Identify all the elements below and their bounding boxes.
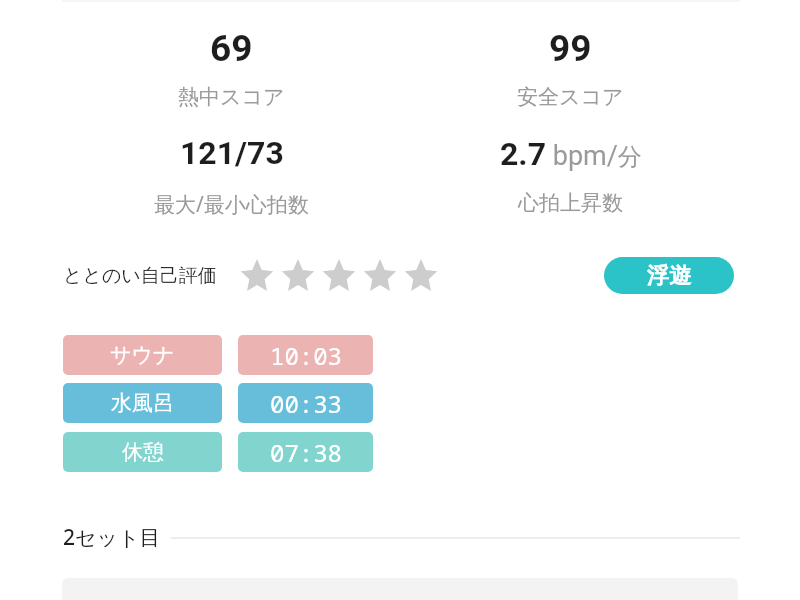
staticText: 熱中スコア [178, 84, 285, 110]
button[interactable]: 07:38 [238, 432, 373, 472]
staticText: 浮遊 [647, 262, 691, 290]
button[interactable]: Rate 3 stars [322, 259, 356, 291]
button[interactable]: 水風呂 [63, 383, 222, 423]
staticText: 07:38 [270, 436, 342, 469]
staticText: 99 [549, 27, 592, 70]
button[interactable]: Rate 5 stars [404, 259, 438, 291]
staticText: ととのい自己評価 [63, 264, 217, 288]
staticText: 最大/最小心拍数 [154, 190, 309, 219]
button[interactable]: 00:33 [238, 383, 373, 423]
staticText: 心拍上昇数 [518, 190, 623, 216]
staticText: サウナ [110, 342, 175, 368]
button[interactable]: ととのい自己評価 [63, 264, 217, 288]
staticText: 水風呂 [111, 390, 174, 416]
staticText: 安全スコア [517, 84, 624, 110]
button[interactable]: サウナ [63, 335, 222, 375]
staticText: 2セット目 [63, 523, 161, 552]
staticText: 2.7 bpm/分 [500, 135, 642, 173]
button[interactable]: Rate 1 stars [240, 259, 274, 291]
staticText: 00:33 [270, 387, 342, 420]
staticText: 10:03 [270, 339, 342, 372]
staticText: 69 [210, 27, 253, 70]
button[interactable]: 浮遊 [604, 257, 734, 294]
staticText: 121/73 [180, 134, 284, 172]
button[interactable]: 休憩 [63, 432, 222, 472]
button[interactable]: 10:03 [238, 335, 373, 375]
button[interactable]: Rate 4 stars [363, 259, 397, 291]
button[interactable]: Rate 2 stars [281, 259, 315, 291]
staticText: 休憩 [122, 439, 164, 465]
